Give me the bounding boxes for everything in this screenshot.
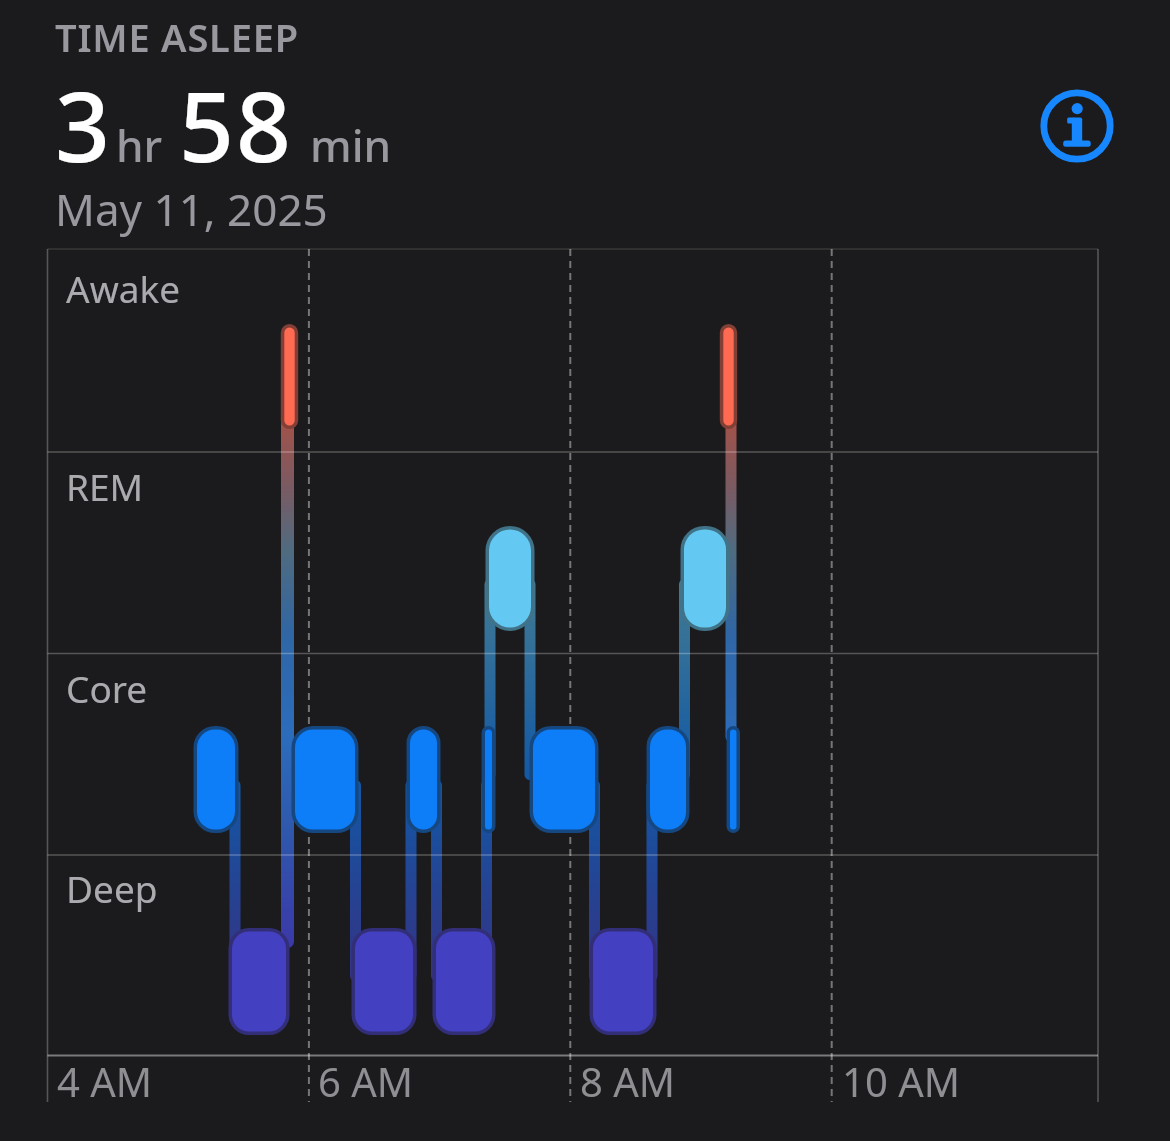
- staticText: 58: [179, 59, 293, 190]
- staticText: 10 AM: [842, 1054, 960, 1108]
- staticText: Core: [66, 663, 148, 713]
- staticText: 6 AM: [318, 1054, 414, 1108]
- staticText: min: [310, 115, 392, 175]
- staticText: TIME ASLEEP: [55, 11, 299, 63]
- staticText: Awake: [66, 263, 181, 313]
- staticText: 4 AM: [57, 1054, 153, 1108]
- staticText: Deep: [66, 863, 158, 913]
- staticText: 3: [55, 59, 110, 190]
- staticText: May 11, 2025: [55, 179, 328, 239]
- staticText: 8 AM: [580, 1054, 676, 1108]
- staticText: hr: [116, 115, 163, 175]
- button[interactable]: [1040, 89, 1114, 163]
- staticText: REM: [66, 461, 144, 511]
